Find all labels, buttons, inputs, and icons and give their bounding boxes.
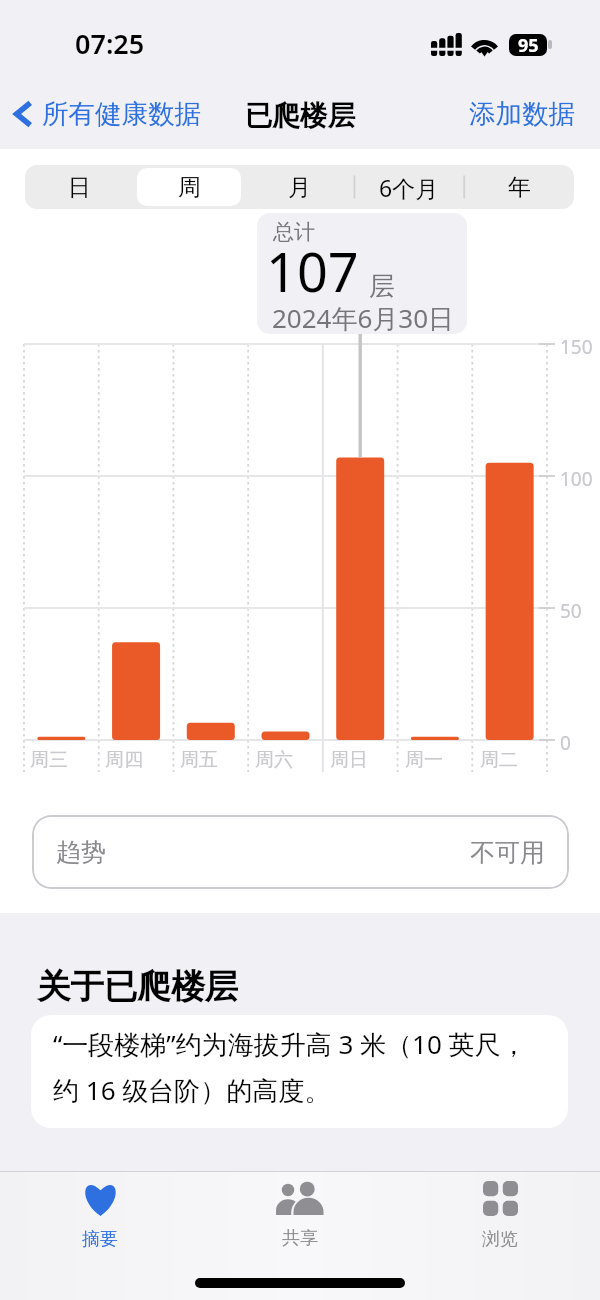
staticText: 100 bbox=[560, 466, 593, 492]
button[interactable]: 添加数据 bbox=[469, 97, 575, 130]
staticText: 日 bbox=[68, 173, 91, 202]
staticText: 所有健康数据 bbox=[42, 97, 201, 130]
button[interactable]: 6个月 bbox=[354, 165, 464, 209]
staticText: 50 bbox=[560, 598, 582, 624]
staticText: 107 bbox=[266, 234, 359, 308]
staticText: 6个月 bbox=[379, 172, 439, 203]
staticText: 周四 bbox=[105, 748, 143, 772]
button[interactable]: 摘要 bbox=[0, 1182, 200, 1251]
staticText: 周二 bbox=[480, 748, 518, 772]
staticText: 周一 bbox=[405, 748, 443, 772]
staticText: 07:25 bbox=[75, 25, 145, 62]
button[interactable]: 日 bbox=[25, 165, 134, 209]
staticText: 周 bbox=[178, 173, 201, 202]
staticText: 2024年6月30日 bbox=[272, 300, 455, 334]
staticText: 共享 bbox=[282, 1227, 318, 1250]
staticText: 周六 bbox=[255, 748, 293, 772]
staticText: 0 bbox=[560, 730, 571, 756]
button[interactable]: 返回 bbox=[13, 97, 201, 130]
button[interactable]: 年 bbox=[464, 165, 574, 209]
staticText: 关于已爬楼层 bbox=[37, 966, 238, 1008]
button[interactable]: 月 bbox=[244, 165, 354, 209]
staticText: 浏览 bbox=[482, 1228, 518, 1251]
staticText: 趋势 bbox=[56, 837, 106, 868]
button[interactable]: 周 bbox=[134, 165, 244, 209]
staticText: 不可用 bbox=[470, 837, 545, 868]
staticText: 层 bbox=[369, 270, 395, 303]
staticText: “一段楼梯”约为海拔升高 3 米（10 英尺，约 16 级台阶）的高度。 bbox=[53, 1026, 533, 1107]
staticText: 总计 bbox=[273, 219, 315, 245]
staticText: 150 bbox=[560, 334, 593, 360]
staticText: 摘要 bbox=[82, 1228, 118, 1251]
staticText: 周三 bbox=[30, 748, 68, 772]
staticText: 周日 bbox=[330, 748, 368, 772]
staticText: 年 bbox=[508, 173, 531, 202]
button[interactable]: 趋势 bbox=[32, 815, 569, 889]
staticText: 95 bbox=[518, 34, 539, 55]
button[interactable]: 共享 bbox=[200, 1182, 400, 1250]
staticText: 已爬楼层 bbox=[245, 99, 355, 134]
staticText: 月 bbox=[288, 173, 311, 202]
button[interactable]: 浏览 bbox=[400, 1181, 600, 1251]
other: 返回 bbox=[13, 98, 34, 130]
staticText: 周五 bbox=[180, 748, 218, 772]
